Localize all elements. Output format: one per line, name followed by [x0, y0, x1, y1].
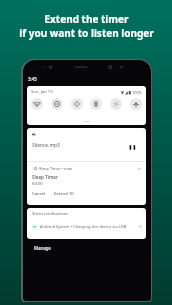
staticText: if you want to listen longer [19, 26, 154, 40]
button[interactable]: Extend 10 [54, 191, 74, 197]
staticText: Manage [34, 245, 51, 251]
staticText: Silent notifications [32, 211, 69, 217]
button[interactable]: Android System • Charging this device vi… [32, 224, 142, 229]
staticText: Extend 10 [54, 191, 74, 197]
button[interactable]: Do not disturb [51, 98, 63, 110]
button[interactable]: Hotspot [110, 98, 122, 110]
staticText: Sleep Timer [32, 174, 58, 180]
button[interactable]: Auto rotate [71, 98, 83, 110]
staticText: Silence.mp3 [32, 142, 60, 149]
button[interactable]: Wi-Fi [31, 98, 43, 110]
staticText: Sun, Jan 19 [31, 89, 53, 95]
staticText: 100% [132, 90, 142, 95]
button[interactable]: Airplane mode [130, 98, 142, 110]
button[interactable]: Battery saver [90, 98, 102, 110]
staticText: Android System • Charging this device vi… [40, 224, 127, 229]
button[interactable]: Manage [31, 243, 54, 253]
staticText: Extend the timer [44, 12, 129, 26]
staticText: 60:00 [32, 181, 43, 187]
staticText: Sleep Timer • now [39, 166, 72, 171]
button[interactable]: Pause [128, 143, 137, 152]
button[interactable]: Cancel [32, 191, 46, 197]
staticText: Cancel [32, 191, 46, 197]
staticText: 3:45 [28, 76, 37, 82]
